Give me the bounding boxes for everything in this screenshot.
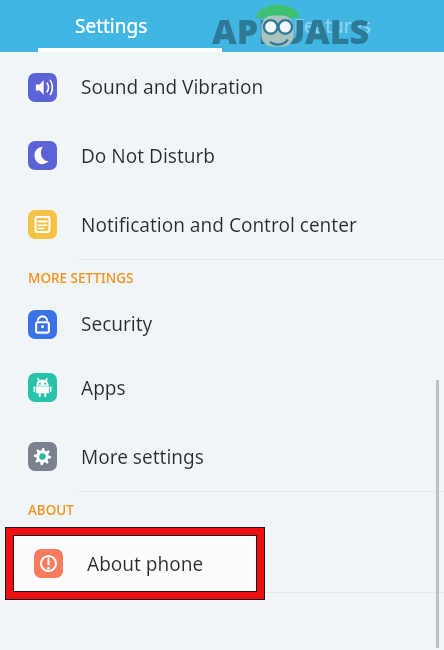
button[interactable]: Apps [0,353,444,422]
staticText: Notification and Control center [81,212,357,238]
staticText: Settings [75,13,148,39]
button[interactable]: Settings [0,0,222,52]
button[interactable]: Do Not Disturb [0,121,444,190]
staticText: Apps [81,375,126,401]
staticText: Security [81,311,153,337]
button[interactable]: Security [0,295,444,353]
staticText: Sound and Vibration [81,74,264,100]
staticText: APPUALS [212,8,370,54]
staticText: About phone [87,551,204,577]
staticText: MORE SETTINGS [28,269,134,287]
staticText: ABOUT [28,501,74,519]
staticText: Do Not Disturb [81,143,216,169]
button[interactable]: Notification and Control center [0,190,444,259]
staticText: More settings [81,444,204,470]
button[interactable]: Features [222,0,444,52]
button[interactable]: About phone [14,536,256,591]
button[interactable]: Sound and Vibration [0,53,444,121]
button[interactable]: More settings [0,422,444,491]
staticText: Features [294,13,372,39]
